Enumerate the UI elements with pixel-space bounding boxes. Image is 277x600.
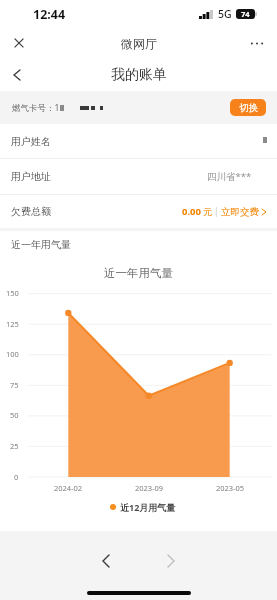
button[interactable]: Close bbox=[7, 31, 31, 55]
button[interactable]: More options bbox=[245, 31, 269, 55]
staticText: 四川省*** bbox=[207, 170, 252, 183]
staticText: 125 bbox=[6, 319, 19, 329]
staticText: 立即交费 bbox=[221, 206, 259, 218]
staticText: 近一年用气量 bbox=[104, 266, 173, 280]
staticText: 2024-02 bbox=[54, 483, 83, 493]
staticText: 我的账单 bbox=[111, 66, 167, 84]
staticText: 用户姓名 bbox=[11, 135, 51, 148]
button[interactable]: Forward bbox=[159, 549, 183, 573]
staticText: 75 bbox=[10, 380, 19, 390]
staticText: 12:44 bbox=[33, 6, 66, 23]
staticText: 150 bbox=[6, 288, 19, 298]
button[interactable]: Back bbox=[5, 63, 29, 87]
staticText: 25 bbox=[10, 441, 19, 451]
staticText: 燃气卡号：1 bbox=[12, 102, 60, 114]
button[interactable]: 用户姓名 bbox=[0, 124, 277, 158]
staticText: 用户地址 bbox=[11, 170, 51, 183]
staticText: 微网厅 bbox=[121, 36, 157, 51]
button[interactable]: 立即交费 bbox=[221, 206, 266, 218]
staticText: 100 bbox=[6, 349, 19, 359]
staticText: 近12月用气量 bbox=[120, 501, 176, 513]
staticText: 切换 bbox=[239, 102, 258, 114]
staticText: 0.00 bbox=[182, 205, 201, 218]
button[interactable]: Back bbox=[94, 549, 118, 573]
staticText: 欠费总额 bbox=[11, 205, 51, 218]
staticText: 2023-05 bbox=[216, 483, 245, 493]
button[interactable]: 用户地址 bbox=[0, 159, 277, 194]
staticText: 2023-09 bbox=[135, 483, 164, 493]
staticText: 元 bbox=[203, 206, 212, 217]
staticText: 50 bbox=[10, 410, 19, 420]
staticText: 近一年用气量 bbox=[11, 238, 71, 251]
staticText: 5G bbox=[218, 7, 232, 21]
staticText: 0 bbox=[14, 472, 19, 482]
staticText: 74 bbox=[241, 9, 250, 19]
button[interactable]: 切换 bbox=[230, 99, 266, 116]
